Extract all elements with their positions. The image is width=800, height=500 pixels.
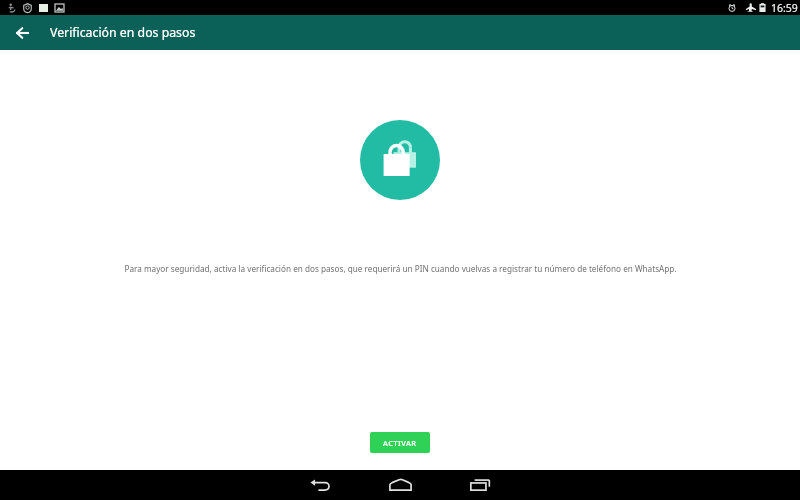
staticText: Verificación en dos pasos (50, 24, 196, 41)
staticText: 16:59 (771, 1, 798, 15)
button[interactable]: Home (370, 470, 430, 500)
button[interactable]: Recent apps (450, 470, 510, 500)
staticText: ACTIVAR (383, 438, 417, 448)
staticText: Para mayor seguridad, activa la verifica… (124, 263, 677, 274)
button[interactable]: Navigate up (8, 15, 37, 50)
button[interactable]: Back (290, 470, 350, 500)
button[interactable]: ACTIVAR (370, 432, 430, 453)
